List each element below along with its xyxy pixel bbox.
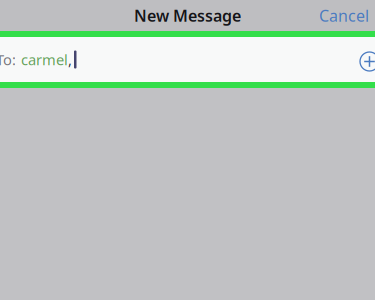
button[interactable]: Add contact xyxy=(360,48,375,71)
staticText: New Message xyxy=(134,5,241,26)
button[interactable]: To: xyxy=(0,31,375,88)
staticText: To: xyxy=(0,50,16,69)
staticText: Cancel xyxy=(319,5,369,26)
staticText: carmel xyxy=(21,50,68,69)
staticText: , xyxy=(68,50,72,69)
button[interactable]: Cancel xyxy=(313,0,375,32)
